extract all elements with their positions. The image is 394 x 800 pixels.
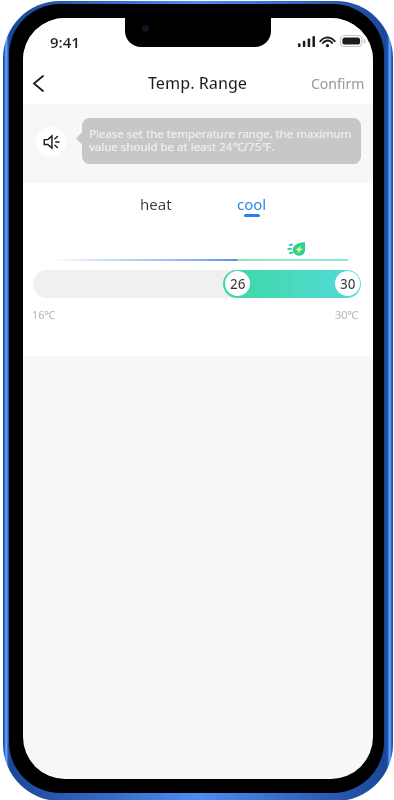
staticText: 26 (230, 275, 246, 293)
staticText: heat (140, 194, 172, 214)
staticText: Confirm (311, 74, 365, 93)
staticText: Temp. Range (148, 72, 248, 94)
button[interactable]: Confirm (303, 61, 373, 105)
button[interactable]: cool (233, 191, 271, 223)
staticText: 30 (340, 275, 356, 293)
staticText: 9:41 (50, 32, 80, 52)
button[interactable]: Voice announcement (36, 127, 66, 157)
button[interactable]: heat (137, 191, 175, 217)
staticText: 30℃ (335, 307, 359, 322)
staticText: 16℃ (32, 307, 56, 322)
button[interactable]: Minimum 26 (225, 271, 250, 296)
staticText: cool (237, 194, 267, 214)
button[interactable]: Maximum 30 (335, 271, 360, 296)
staticText: Please set the temperature range, the ma… (89, 126, 352, 154)
button[interactable]: Back (23, 61, 54, 105)
